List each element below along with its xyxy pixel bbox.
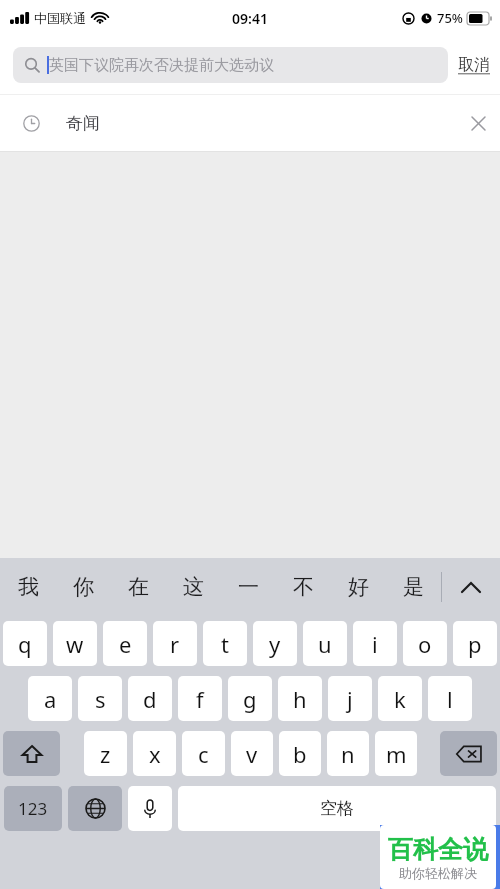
- button[interactable]: v: [231, 731, 273, 776]
- button[interactable]: 是: [386, 558, 441, 616]
- button[interactable]: 这: [166, 558, 221, 616]
- staticText: 你: [73, 574, 94, 600]
- button[interactable]: q: [3, 621, 47, 666]
- button[interactable]: u: [303, 621, 347, 666]
- button[interactable]: i: [353, 621, 397, 666]
- button[interactable]: h: [278, 676, 322, 721]
- staticText: g: [243, 684, 257, 714]
- staticText: 中国联通: [34, 10, 86, 26]
- staticText: x: [149, 739, 161, 769]
- staticText: 75%: [437, 9, 463, 27]
- button[interactable]: n: [327, 731, 369, 776]
- staticText: l: [447, 684, 453, 714]
- staticText: 这: [183, 574, 204, 600]
- button[interactable]: 取消: [458, 55, 490, 75]
- staticText: u: [318, 629, 332, 659]
- staticText: 英国下议院再次否决提前大选动议: [49, 56, 274, 75]
- button[interactable]: t: [203, 621, 247, 666]
- button[interactable]: 一: [221, 558, 276, 616]
- button[interactable]: Voice input: [128, 786, 172, 831]
- staticText: d: [143, 684, 157, 714]
- staticText: y: [269, 629, 281, 659]
- staticText: c: [198, 739, 209, 769]
- staticText: m: [386, 739, 407, 769]
- button[interactable]: 在: [111, 558, 166, 616]
- staticText: 空格: [320, 798, 354, 819]
- button[interactable]: 你: [56, 558, 111, 616]
- staticText: 一: [238, 574, 259, 600]
- button[interactable]: y: [253, 621, 297, 666]
- staticText: k: [394, 684, 406, 714]
- staticText: o: [418, 629, 432, 659]
- button[interactable]: f: [178, 676, 222, 721]
- staticText: 助你轻松解决: [399, 865, 477, 881]
- button[interactable]: 奇闻: [0, 95, 500, 151]
- button[interactable]: p: [453, 621, 497, 666]
- button[interactable]: e: [103, 621, 147, 666]
- button[interactable]: z: [84, 731, 127, 776]
- staticText: e: [119, 629, 132, 659]
- staticText: 123: [18, 797, 48, 820]
- button[interactable]: a: [28, 676, 72, 721]
- button[interactable]: 我: [0, 558, 56, 616]
- staticText: 取消: [458, 55, 490, 75]
- button[interactable]: o: [403, 621, 447, 666]
- staticText: b: [293, 739, 307, 769]
- staticText: 好: [348, 574, 369, 600]
- button[interactable]: 好: [331, 558, 386, 616]
- staticText: p: [468, 629, 482, 659]
- staticText: t: [221, 629, 229, 659]
- button[interactable]: Delete history item: [456, 101, 500, 145]
- button[interactable]: k: [378, 676, 422, 721]
- button[interactable]: d: [128, 676, 172, 721]
- staticText: h: [293, 684, 307, 714]
- staticText: a: [44, 684, 57, 714]
- button[interactable]: Expand candidates: [442, 558, 500, 616]
- staticText: n: [341, 739, 355, 769]
- button[interactable]: w: [53, 621, 97, 666]
- staticText: 百科全说: [388, 834, 488, 865]
- button[interactable]: j: [328, 676, 372, 721]
- staticText: z: [100, 739, 111, 769]
- staticText: j: [347, 684, 353, 714]
- button[interactable]: Backspace: [440, 731, 497, 776]
- staticText: 我: [18, 574, 39, 600]
- button[interactable]: r: [153, 621, 197, 666]
- button[interactable]: c: [182, 731, 225, 776]
- button[interactable]: Shift: [3, 731, 60, 776]
- staticText: 不: [293, 574, 314, 600]
- staticText: f: [196, 684, 204, 714]
- staticText: q: [18, 629, 32, 659]
- button[interactable]: Switch language: [68, 786, 122, 831]
- staticText: i: [372, 629, 378, 659]
- staticText: s: [95, 684, 106, 714]
- button[interactable]: x: [133, 731, 176, 776]
- button[interactable]: 不: [276, 558, 331, 616]
- button[interactable]: b: [279, 731, 321, 776]
- staticText: 在: [128, 574, 149, 600]
- staticText: 奇闻: [66, 113, 100, 134]
- button[interactable]: 英国下议院再次否决提前大选动议: [13, 47, 448, 83]
- staticText: v: [246, 739, 258, 769]
- button[interactable]: 空格: [178, 786, 496, 831]
- staticText: w: [66, 629, 84, 659]
- staticText: 09:41: [232, 9, 268, 28]
- button[interactable]: 123: [4, 786, 62, 831]
- button[interactable]: s: [78, 676, 122, 721]
- button[interactable]: l: [428, 676, 472, 721]
- button[interactable]: m: [375, 731, 417, 776]
- button[interactable]: g: [228, 676, 272, 721]
- staticText: 是: [403, 574, 424, 600]
- staticText: r: [170, 629, 180, 659]
